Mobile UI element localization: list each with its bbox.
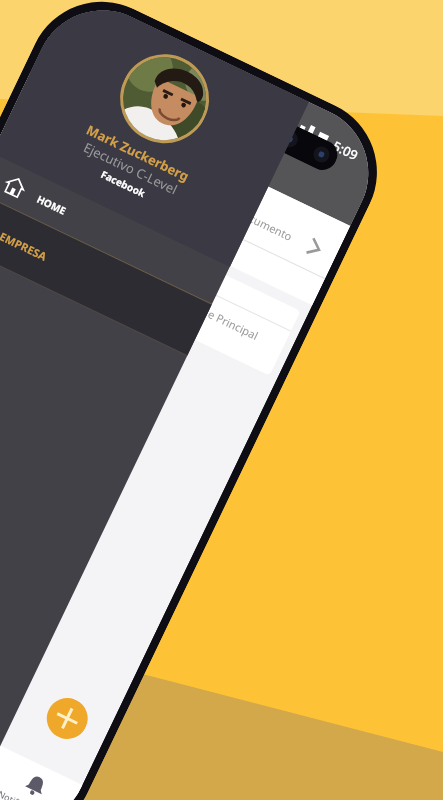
staticText: 5:09: [330, 137, 361, 164]
staticText: Notificaciones: [0, 787, 56, 800]
staticText: Mark Zuckerberg: [84, 121, 192, 185]
button[interactable]: Agregar: [40, 691, 95, 746]
staticText: Ejecutivo C-Level: [81, 138, 181, 198]
staticText: MI EMPRESA: [0, 221, 49, 264]
staticText: Sede Principal: [188, 298, 261, 343]
button[interactable]: Notificaciones: [0, 760, 74, 800]
staticText: HOME: [35, 192, 69, 218]
staticText: Documento: [233, 204, 295, 244]
button[interactable]: HOME: [0, 153, 230, 304]
staticText: Facebook: [99, 167, 148, 200]
